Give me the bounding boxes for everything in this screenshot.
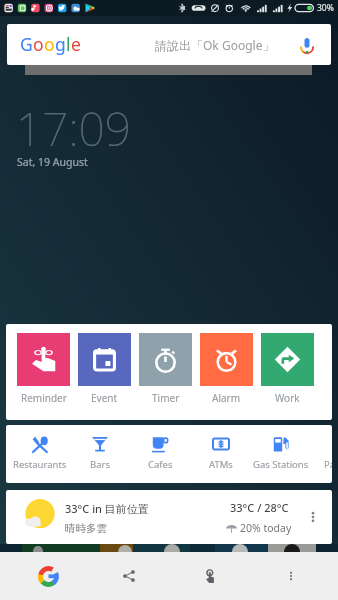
staticText: Event — [91, 391, 118, 405]
button[interactable]: 33°C in 目前位置 — [6, 490, 332, 544]
staticText: 17:09 — [16, 97, 131, 160]
staticText: Work — [275, 391, 300, 405]
staticText: o — [33, 32, 44, 56]
button[interactable]: Alarm — [200, 333, 253, 405]
staticText: 30% — [317, 2, 334, 14]
button[interactable]: Timer — [139, 333, 192, 405]
staticText: Bars — [90, 458, 110, 471]
staticText: g — [55, 32, 66, 56]
staticText: 33°C in 目前位置 — [65, 501, 149, 516]
staticText: Parking — [324, 458, 332, 471]
button[interactable]: Google — [24, 552, 72, 600]
staticText: G — [20, 32, 33, 56]
staticText: ATMs — [209, 458, 233, 471]
staticText: Sat, 19 August — [17, 155, 88, 169]
button[interactable]: Restaurants — [11, 425, 69, 483]
staticText: Gas Stations — [253, 458, 309, 471]
button[interactable]: Work — [261, 333, 314, 405]
button[interactable]: Reminder — [17, 333, 70, 405]
button[interactable]: Event — [78, 333, 131, 405]
staticText: 請說出「Ok Google」 — [155, 37, 275, 53]
button[interactable]: Bars — [71, 425, 129, 483]
button[interactable]: More options — [304, 508, 322, 526]
staticText: Timer — [152, 391, 180, 405]
button[interactable]: Voice search — [296, 34, 318, 56]
staticText: 晴時多雲 — [65, 522, 107, 535]
staticText: Restaurants — [13, 458, 67, 471]
button[interactable]: Share — [105, 552, 153, 600]
staticText: l — [66, 32, 71, 56]
staticText: 33°C / 28°C — [230, 500, 289, 515]
button[interactable]: Gas Stations — [252, 425, 310, 483]
staticText: o — [44, 32, 55, 56]
button[interactable]: ATMs — [192, 425, 250, 483]
staticText: Alarm — [212, 391, 241, 405]
button[interactable]: G — [7, 24, 331, 65]
staticText: e — [71, 32, 81, 56]
button[interactable]: More options — [267, 552, 315, 600]
staticText: Reminder — [21, 391, 67, 405]
button[interactable]: Screen search — [186, 552, 234, 600]
button[interactable]: Parking — [312, 425, 332, 483]
staticText: Cafes — [148, 458, 173, 471]
staticText: 20% today — [240, 521, 292, 535]
button[interactable]: Cafes — [131, 425, 189, 483]
